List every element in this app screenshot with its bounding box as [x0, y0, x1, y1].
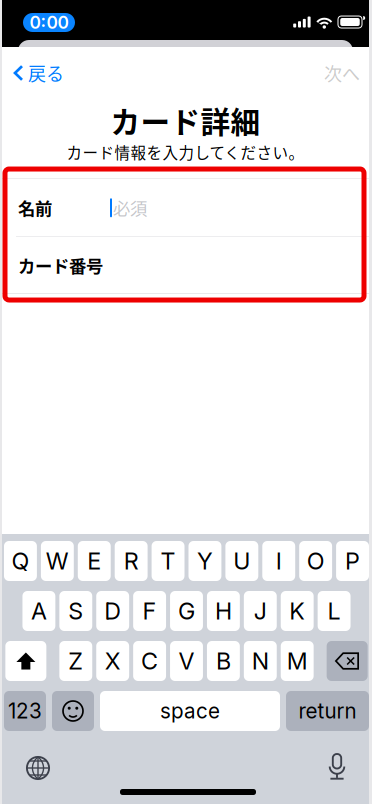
- button[interactable]: U: [225, 541, 258, 581]
- button[interactable]: F: [133, 591, 166, 631]
- button[interactable]: Shift: [5, 641, 46, 681]
- button[interactable]: G: [170, 591, 203, 631]
- staticText: return: [298, 698, 356, 723]
- staticText: カード情報を入力してください。: [66, 141, 304, 163]
- button[interactable]: 名前: [2, 179, 369, 237]
- button[interactable]: Delete: [327, 641, 368, 681]
- button[interactable]: Next keyboard: [26, 756, 50, 780]
- button[interactable]: K: [281, 591, 314, 631]
- button[interactable]: M: [281, 641, 314, 681]
- button[interactable]: return: [286, 691, 369, 731]
- button[interactable]: 123: [4, 691, 46, 731]
- button[interactable]: R: [115, 541, 148, 581]
- staticText: K: [289, 597, 305, 625]
- staticText: C: [141, 647, 158, 675]
- staticText: カード番号: [18, 253, 103, 278]
- button[interactable]: Dictation: [327, 754, 347, 780]
- button[interactable]: Z: [59, 641, 92, 681]
- staticText: 必須: [113, 195, 147, 220]
- staticText: H: [215, 597, 232, 625]
- staticText: 名前: [18, 195, 52, 220]
- staticText: P: [345, 547, 360, 575]
- staticText: 123: [8, 698, 42, 723]
- button[interactable]: Emoji: [52, 691, 94, 731]
- button[interactable]: A: [22, 591, 55, 631]
- button[interactable]: Y: [188, 541, 221, 581]
- staticText: カード詳細: [110, 99, 260, 141]
- staticText: B: [216, 647, 231, 675]
- staticText: I: [276, 547, 282, 575]
- staticText: Q: [11, 547, 29, 575]
- staticText: D: [104, 597, 121, 625]
- button[interactable]: V: [170, 641, 203, 681]
- button[interactable]: T: [152, 541, 184, 581]
- button[interactable]: 次へ: [313, 56, 371, 90]
- button[interactable]: N: [244, 641, 277, 681]
- staticText: W: [46, 547, 69, 575]
- button[interactable]: L: [318, 591, 350, 631]
- staticText: X: [105, 647, 121, 675]
- button[interactable]: C: [133, 641, 166, 681]
- button[interactable]: H: [207, 591, 240, 631]
- staticText: S: [68, 597, 83, 625]
- staticText: N: [252, 647, 269, 675]
- staticText: J: [254, 597, 267, 625]
- staticText: O: [307, 547, 325, 575]
- staticText: M: [287, 647, 308, 675]
- button[interactable]: space: [100, 691, 280, 731]
- button[interactable]: P: [336, 541, 369, 581]
- staticText: R: [124, 547, 139, 575]
- staticText: G: [178, 597, 195, 625]
- staticText: Z: [68, 647, 83, 675]
- staticText: L: [328, 597, 341, 625]
- staticText: F: [143, 597, 157, 625]
- staticText: space: [160, 698, 220, 723]
- button[interactable]: S: [59, 591, 92, 631]
- staticText: E: [87, 547, 101, 575]
- staticText: A: [31, 597, 47, 625]
- staticText: T: [161, 547, 176, 575]
- button[interactable]: I: [262, 541, 295, 581]
- button[interactable]: カード番号: [2, 237, 369, 294]
- staticText: V: [178, 647, 194, 675]
- staticText: 0:00: [29, 12, 68, 33]
- button[interactable]: E: [78, 541, 111, 581]
- button[interactable]: D: [96, 591, 129, 631]
- button[interactable]: 戻る: [2, 56, 72, 90]
- button[interactable]: X: [96, 641, 129, 681]
- button[interactable]: J: [244, 591, 277, 631]
- button[interactable]: W: [41, 541, 74, 581]
- button[interactable]: B: [207, 641, 240, 681]
- staticText: Y: [197, 547, 213, 575]
- staticText: 戻る: [28, 60, 64, 86]
- staticText: 次へ: [324, 60, 360, 86]
- staticText: U: [233, 547, 250, 575]
- button[interactable]: Q: [4, 541, 37, 581]
- button[interactable]: O: [299, 541, 332, 581]
